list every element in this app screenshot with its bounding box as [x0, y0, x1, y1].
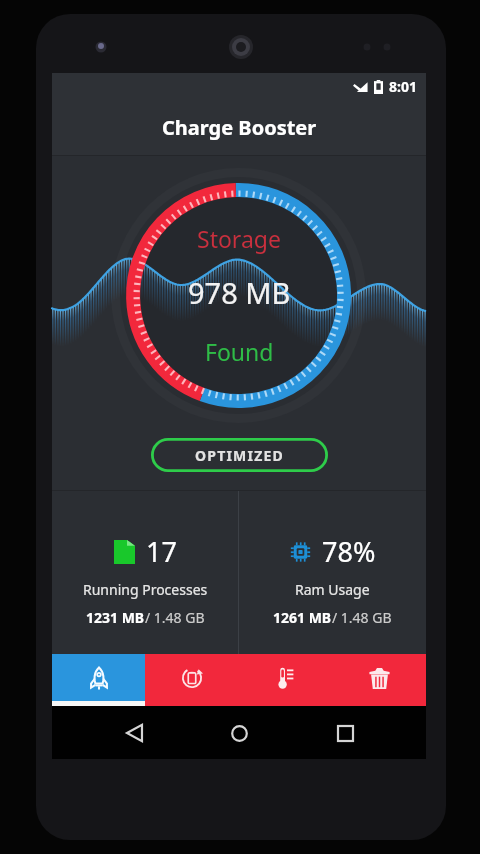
staticText: 1231 MB [86, 608, 145, 627]
staticText: Storage [197, 223, 281, 254]
button[interactable]: Cooler [238, 654, 332, 706]
staticText: 1261 MB [273, 608, 332, 627]
staticText: Charge Booster [162, 114, 317, 141]
staticText: / 1.48 GB [332, 608, 392, 627]
button[interactable]: Recents [321, 709, 369, 757]
staticText: / 1.48 GB [145, 608, 205, 627]
button[interactable]: Battery Saver [145, 654, 238, 706]
staticText: Running Processes [83, 580, 208, 599]
button[interactable]: 17 [52, 491, 238, 654]
staticText: 17 [146, 533, 177, 570]
button[interactable]: Back [110, 709, 158, 757]
staticText: 978 MB [188, 273, 291, 312]
staticText: 8:01 [389, 77, 417, 96]
button[interactable]: Clean [332, 654, 426, 706]
button[interactable]: Boost [52, 654, 145, 706]
staticText: Ram Usage [295, 580, 370, 599]
staticText: Found [205, 336, 274, 367]
staticText: 78% [322, 533, 376, 570]
button[interactable]: Home [215, 709, 263, 757]
button[interactable]: 78% [239, 491, 426, 654]
button[interactable]: OPTIMIZED [151, 438, 328, 472]
staticText: OPTIMIZED [195, 446, 284, 465]
